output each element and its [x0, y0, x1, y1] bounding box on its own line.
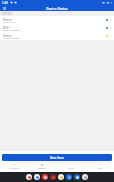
button[interactable]: Dashboard [0, 161, 28, 172]
staticText: Pixel 6 Pro [3, 20, 16, 23]
button[interactable]: Status [0, 32, 114, 40]
staticText: Alerts [68, 167, 74, 170]
button[interactable]: App shortcut [82, 174, 88, 180]
staticText: New Scan [50, 156, 64, 160]
button[interactable]: Wi-Fi [0, 24, 114, 32]
button[interactable]: New Scan [2, 154, 112, 161]
button[interactable]: App shortcut [42, 174, 48, 180]
staticText: Device [3, 18, 12, 22]
button[interactable]: Open navigation menu [2, 6, 7, 11]
staticText: Dashboard [9, 167, 20, 170]
button[interactable]: Device [0, 16, 114, 24]
button[interactable]: App shortcut [34, 174, 40, 180]
staticText: Wi-Fi [3, 26, 10, 30]
button[interactable]: App shortcut [50, 174, 56, 180]
button[interactable]: App shortcut [66, 174, 72, 180]
button[interactable]: Alerts [56, 161, 85, 172]
staticText: Home network [3, 28, 21, 31]
staticText: Devices [38, 167, 46, 170]
staticText: More [97, 167, 103, 170]
staticText: SYSTEM [2, 12, 12, 16]
staticText: Status [3, 34, 12, 38]
staticText: Needs update [3, 36, 20, 39]
button[interactable]: App shortcut [26, 174, 32, 180]
button[interactable]: Devices [28, 161, 56, 172]
staticText: 1:20 [2, 1, 8, 5]
button[interactable]: More [85, 161, 114, 172]
button[interactable]: App shortcut [58, 174, 64, 180]
staticText: Device Status [46, 6, 68, 11]
button[interactable]: App shortcut [74, 174, 80, 180]
